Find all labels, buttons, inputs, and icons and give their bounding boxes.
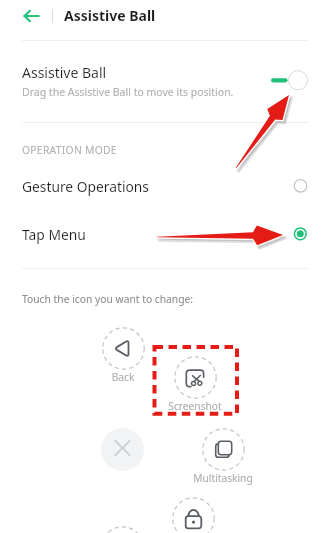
staticText: Screenshot (135, 399, 255, 413)
button[interactable]: Screenshot (174, 356, 217, 399)
staticText: Multitasking (163, 471, 283, 485)
button[interactable]: More (101, 526, 144, 533)
staticText: Gesture Operations (22, 177, 149, 196)
button[interactable] (0, 50, 330, 106)
staticText: Back (63, 370, 183, 384)
button[interactable]: Back (15, 0, 48, 32)
button[interactable]: Back (102, 327, 145, 370)
staticText: Assistive Ball (22, 63, 107, 82)
staticText: Tap Menu (22, 225, 86, 244)
button[interactable] (0, 216, 330, 252)
staticText: Touch the icon you want to change: (22, 292, 194, 306)
button[interactable]: Toggle Assistive Ball (271, 70, 309, 92)
staticText: Drag the Assistive Ball to move its posi… (22, 85, 234, 99)
button[interactable]: Icon (101, 428, 144, 471)
button[interactable]: Multitasking (202, 428, 245, 471)
button[interactable] (0, 168, 330, 204)
staticText: OPERATION MODE (22, 143, 117, 157)
staticText: Assistive Ball (64, 6, 156, 25)
button[interactable]: Lock (172, 497, 215, 533)
